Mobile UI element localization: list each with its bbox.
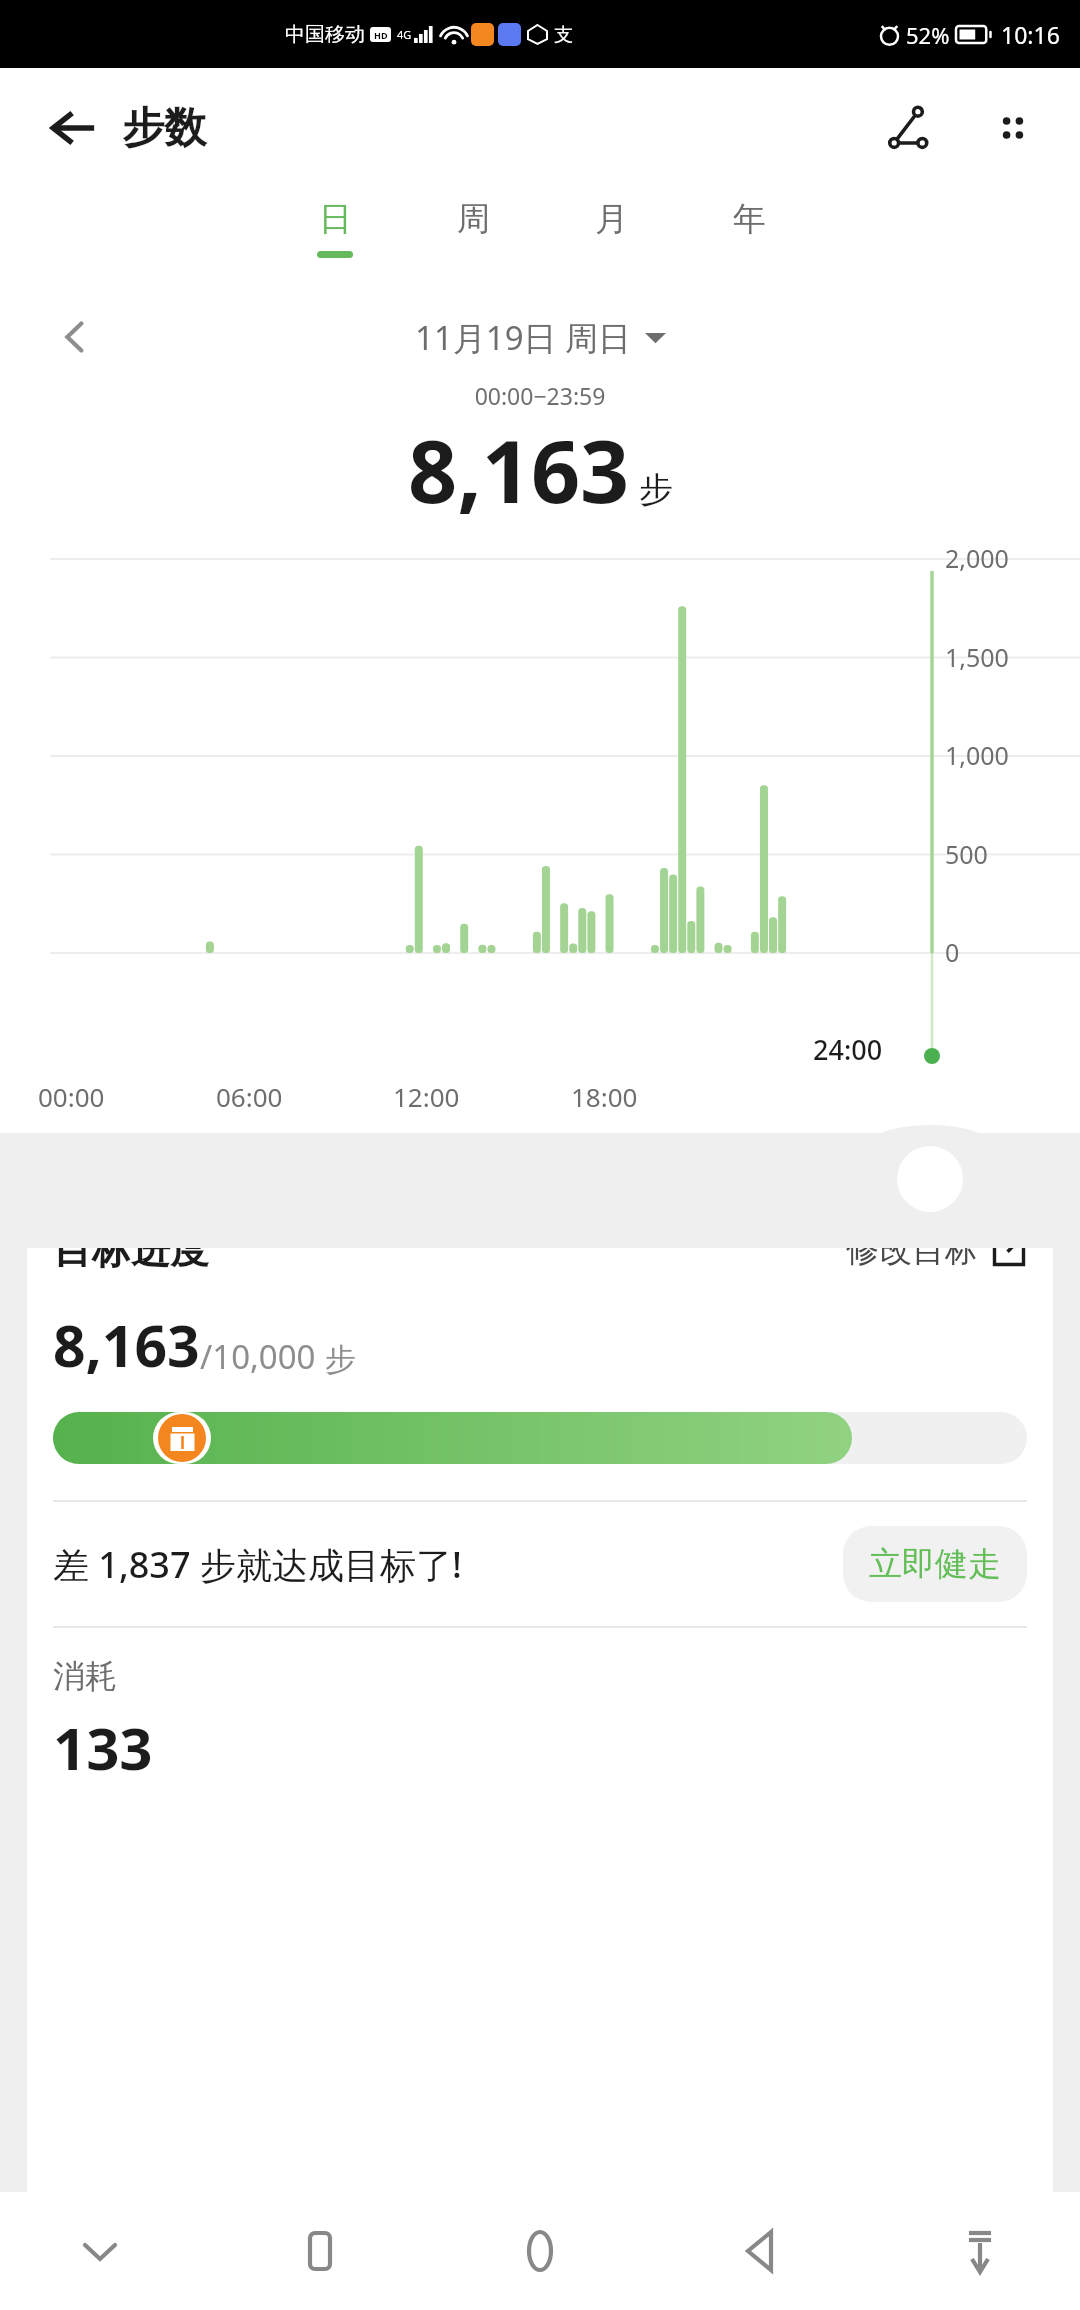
- staticText: 步: [639, 468, 673, 511]
- staticText: 消耗: [53, 1656, 117, 1696]
- staticText: 步: [325, 1340, 356, 1379]
- button[interactable]: 日: [266, 198, 404, 258]
- staticText: 0: [945, 935, 960, 969]
- staticText: 步数: [122, 102, 206, 155]
- button[interactable]: Collapse keyboard: [58, 2209, 142, 2293]
- staticText: 1,000: [945, 738, 1009, 772]
- staticText: 周: [457, 198, 490, 240]
- staticText: 年: [733, 198, 766, 240]
- button[interactable]: 11月19日 周日: [415, 315, 666, 360]
- staticText: 52%: [906, 20, 950, 50]
- button[interactable]: Recents: [278, 2209, 362, 2293]
- staticText: 月: [595, 198, 628, 240]
- staticText: 立即健走: [869, 1543, 1001, 1585]
- staticText: 目标进度: [53, 1225, 209, 1274]
- staticText: 24:00: [813, 1031, 883, 1068]
- button[interactable]: Home: [498, 2209, 582, 2293]
- staticText: 8,163: [53, 1306, 200, 1384]
- button[interactable]: Back: [40, 95, 106, 161]
- staticText: 8,163: [408, 411, 630, 523]
- staticText: /10,000: [200, 1334, 316, 1379]
- staticText: 00:00: [38, 1079, 105, 1114]
- staticText: 修改目标: [846, 1229, 978, 1271]
- staticText: 日: [319, 198, 352, 240]
- button[interactable]: More options: [978, 93, 1048, 163]
- staticText: 4G: [397, 27, 412, 42]
- staticText: 500: [945, 837, 988, 871]
- button[interactable]: Share: [875, 93, 945, 163]
- button[interactable]: Hide navigation bar: [938, 2209, 1022, 2293]
- button[interactable]: 周: [404, 198, 542, 258]
- button[interactable]: 修改目标: [846, 1229, 1027, 1271]
- button[interactable]: 立即健走: [843, 1526, 1027, 1602]
- staticText: 133: [53, 1708, 153, 1787]
- staticText: 00:00−23:59: [0, 380, 1080, 411]
- staticText: 11月19日 周日: [415, 315, 632, 360]
- staticText: 支: [554, 23, 573, 47]
- staticText: 2,000: [945, 541, 1009, 575]
- staticText: 18:00: [571, 1079, 638, 1114]
- staticText: 1,500: [945, 640, 1009, 674]
- staticText: 06:00: [216, 1079, 283, 1114]
- staticText: 12:00: [393, 1079, 460, 1114]
- staticText: HD: [374, 29, 388, 41]
- button[interactable]: 年: [680, 198, 818, 258]
- staticText: 10:16: [1001, 19, 1060, 50]
- staticText: 中国移动: [285, 22, 365, 47]
- button[interactable]: 月: [542, 198, 680, 258]
- button[interactable]: Previous day: [46, 308, 104, 366]
- button[interactable]: Back: [718, 2209, 802, 2293]
- staticText: 差 1,837 步就达成目标了!: [53, 1540, 462, 1589]
